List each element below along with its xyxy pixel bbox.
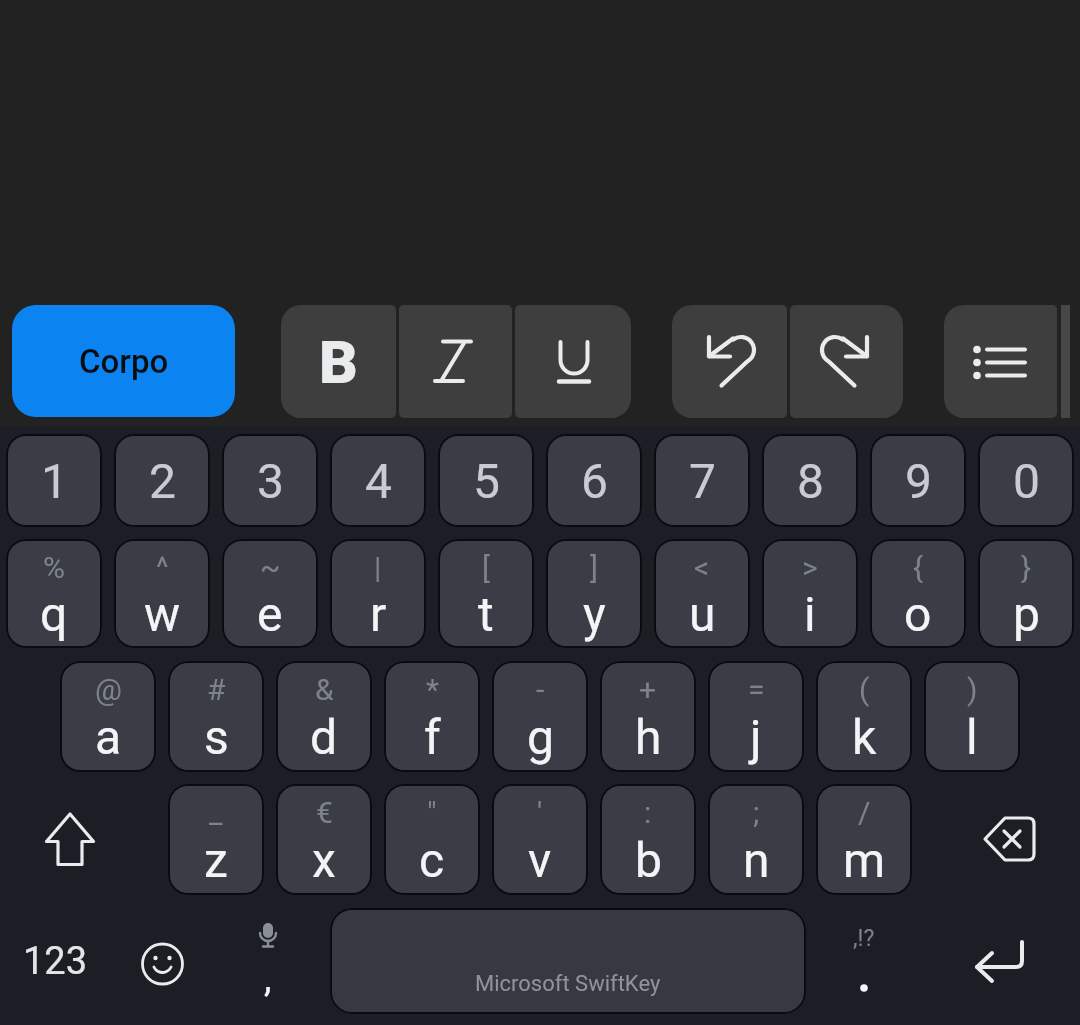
staticText: q	[40, 586, 68, 642]
staticText: m	[843, 832, 886, 888]
button[interactable]: ,	[238, 905, 298, 1015]
staticText: w	[144, 586, 181, 642]
button[interactable]: }	[978, 539, 1074, 648]
staticText: z	[204, 832, 228, 888]
button[interactable]: ;	[708, 784, 804, 895]
button[interactable]: ^	[114, 539, 210, 648]
staticText: Microsoft SwiftKey	[475, 971, 661, 997]
button[interactable]: '	[492, 784, 588, 895]
button[interactable]: [	[438, 539, 534, 648]
staticText: )	[967, 672, 978, 707]
button[interactable]: ]	[546, 539, 642, 648]
button[interactable]: /	[816, 784, 912, 895]
button[interactable]: 3	[222, 434, 318, 527]
button[interactable]: ~	[222, 539, 318, 648]
staticText: g	[527, 709, 554, 765]
button[interactable]: 1	[6, 434, 102, 527]
staticText: -	[536, 672, 545, 707]
button[interactable]: :	[600, 784, 696, 895]
button[interactable]: -	[492, 661, 588, 772]
staticText: Corpo	[79, 342, 169, 381]
staticText: ]	[590, 550, 598, 585]
staticText: 3	[257, 453, 284, 509]
button[interactable]	[35, 804, 105, 874]
staticText: #	[207, 672, 226, 707]
button[interactable]	[130, 932, 195, 997]
button[interactable]: {	[870, 539, 966, 648]
staticText: }	[1021, 550, 1032, 585]
button[interactable]: 5	[438, 434, 534, 527]
staticText: *	[426, 672, 439, 707]
button[interactable]: 9	[870, 434, 966, 527]
button[interactable]	[975, 804, 1045, 874]
button[interactable]: *	[384, 661, 480, 772]
staticText: :	[644, 795, 652, 830]
button[interactable]: (	[816, 661, 912, 772]
staticText: x	[312, 832, 336, 888]
staticText: t	[478, 586, 494, 642]
staticText: ^	[156, 550, 169, 585]
staticText: 7	[689, 453, 716, 509]
button[interactable]	[672, 305, 787, 418]
staticText: h	[635, 709, 662, 765]
button[interactable]: 2	[114, 434, 210, 527]
staticText: 0	[1013, 453, 1040, 509]
button[interactable]: Microsoft SwiftKey	[330, 908, 806, 1014]
button[interactable]: 0	[978, 434, 1074, 527]
staticText: {	[913, 550, 924, 585]
staticText: n	[743, 832, 770, 888]
button[interactable]: 4	[330, 434, 426, 527]
button[interactable]	[515, 305, 631, 418]
staticText: €	[316, 795, 333, 830]
staticText: a	[95, 709, 122, 765]
staticText: 5	[473, 453, 500, 509]
button[interactable]: <	[654, 539, 750, 648]
button[interactable]: 8	[762, 434, 858, 527]
staticText: 8	[797, 453, 824, 509]
button[interactable]: 123	[10, 925, 100, 997]
button[interactable]: B	[281, 305, 396, 418]
staticText: _	[209, 795, 223, 830]
button[interactable]: #	[168, 661, 264, 772]
staticText: o	[904, 586, 932, 642]
staticText: d	[310, 709, 338, 765]
staticText: >	[802, 550, 818, 585]
button[interactable]: Corpo	[12, 305, 235, 417]
button[interactable]: €	[276, 784, 372, 895]
button[interactable]: _	[168, 784, 264, 895]
button[interactable]	[399, 305, 512, 418]
button[interactable]	[790, 305, 903, 418]
button[interactable]	[944, 305, 1057, 418]
staticText: p	[1013, 586, 1040, 642]
button[interactable]: +	[600, 661, 696, 772]
staticText: <	[694, 550, 710, 585]
staticText: |	[374, 550, 382, 585]
button[interactable]: @	[60, 661, 156, 772]
staticText: ,!?	[853, 925, 875, 952]
staticText: y	[583, 586, 606, 642]
button[interactable]	[960, 925, 1045, 1005]
staticText: f	[424, 709, 441, 765]
button[interactable]: "	[384, 784, 480, 895]
staticText: i	[804, 586, 816, 642]
button[interactable]: %	[6, 539, 102, 648]
button[interactable]: &	[276, 661, 372, 772]
button[interactable]: 7	[654, 434, 750, 527]
button[interactable]: 6	[546, 434, 642, 527]
staticText: "	[427, 795, 437, 830]
staticText: 2	[149, 453, 176, 509]
button[interactable]: =	[708, 661, 804, 772]
staticText: r	[370, 586, 387, 642]
staticText: 4	[365, 453, 392, 509]
staticText: B	[319, 327, 358, 397]
staticText: @	[95, 672, 122, 707]
staticText: (	[859, 672, 870, 707]
staticText: 9	[905, 453, 932, 509]
staticText: [	[482, 550, 490, 585]
staticText: c	[419, 832, 445, 888]
button[interactable]: ,!?	[834, 905, 894, 1015]
button[interactable]: )	[924, 661, 1020, 772]
button[interactable]: |	[330, 539, 426, 648]
staticText: 6	[581, 453, 608, 509]
button[interactable]: >	[762, 539, 858, 648]
